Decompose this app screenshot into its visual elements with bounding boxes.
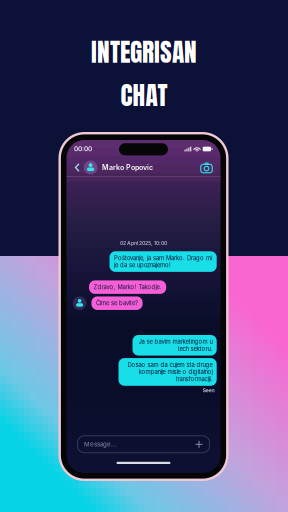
button[interactable]: Back (71, 159, 84, 175)
staticText: INTEGRISAN (91, 33, 197, 71)
staticText: CHAT (120, 76, 167, 114)
staticText: Seen (202, 387, 214, 394)
button[interactable]: Marko Popovic (84, 161, 153, 174)
staticText: Zdravo, Marko! Takodje. (94, 284, 162, 291)
staticText: Došao sam da čujem šta druge kompanije m… (127, 361, 212, 383)
staticText: 00:00 (74, 145, 92, 153)
staticText: 02 April 2025, 10:00 (120, 240, 167, 246)
button[interactable]: Message... (77, 436, 209, 453)
staticText: Poštovanje, ja sam Marko. Drago mi je da… (114, 254, 212, 269)
staticText: Ja se bavim marketingom u tech sektoru. (138, 338, 212, 352)
button[interactable]: Camera (199, 160, 213, 174)
staticText: Marko Popovic (102, 163, 153, 172)
staticText: Message... (84, 441, 117, 448)
staticText: Čime se bavite? (96, 300, 138, 307)
